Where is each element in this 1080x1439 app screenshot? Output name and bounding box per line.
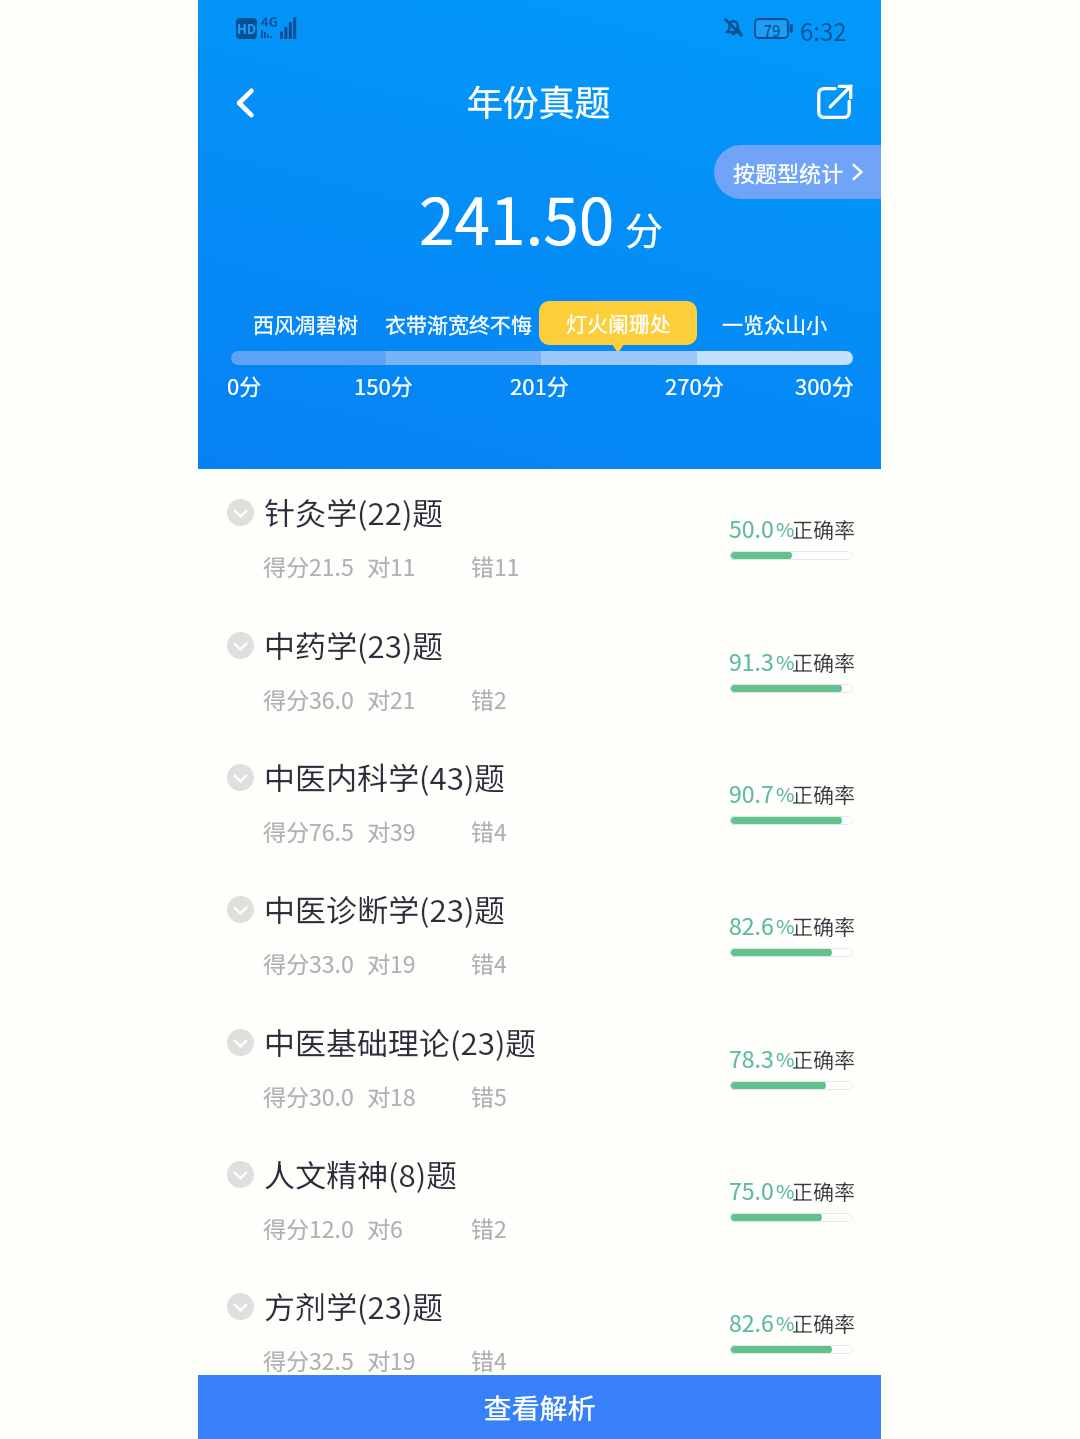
button[interactable]: 中医基础理论(23)题 (198, 1000, 881, 1133)
staticText: 正确率 (792, 779, 855, 809)
button[interactable]: 人文精神(8)题 (198, 1132, 881, 1265)
staticText: 错5 (471, 1079, 507, 1112)
button[interactable]: 查看解析 (198, 1375, 881, 1439)
staticText: 对21 (367, 682, 416, 715)
staticText: % (776, 1308, 795, 1337)
staticText: % (776, 647, 795, 676)
staticText: 分 (625, 201, 664, 256)
button[interactable]: 中医内科学(43)题 (198, 735, 881, 868)
staticText: % (776, 1176, 795, 1205)
staticText: HD (237, 19, 257, 38)
staticText: 对19 (367, 1343, 416, 1376)
staticText: 正确率 (792, 1308, 855, 1338)
button[interactable]: 方剂学(23)题 (198, 1264, 881, 1397)
staticText: 衣带渐宽终不悔 (385, 309, 532, 339)
staticText: % (776, 911, 795, 940)
staticText: 150分 (354, 369, 413, 401)
staticText: 对19 (367, 946, 416, 979)
staticText: 按题型统计 (733, 156, 844, 188)
button[interactable]: 中药学(23)题 (198, 603, 881, 736)
button[interactable]: 灯火阑珊处 (539, 301, 697, 345)
staticText: 错2 (471, 682, 507, 715)
staticText: 错11 (471, 549, 520, 582)
staticText: 一览众山小 (722, 309, 827, 339)
staticText: 中医内科学(43)题 (264, 754, 506, 799)
staticText: 正确率 (792, 514, 855, 544)
staticText: 错4 (471, 946, 507, 979)
staticText: 得分32.5 (263, 1343, 354, 1376)
staticText: % (776, 514, 795, 543)
staticText: 得分30.0 (263, 1079, 354, 1112)
staticText: 方剂学(23)题 (264, 1283, 444, 1328)
staticText: 201分 (510, 369, 569, 401)
staticText: 82.6 (729, 908, 774, 941)
staticText: 对11 (367, 549, 416, 582)
staticText: 得分76.5 (263, 814, 354, 847)
button[interactable]: 按题型统计 (714, 145, 881, 199)
staticText: 灯火阑珊处 (566, 308, 671, 338)
staticText: 查看解析 (483, 1387, 596, 1428)
staticText: 正确率 (792, 911, 855, 941)
staticText: 79 (756, 20, 788, 42)
staticText: 对39 (367, 814, 416, 847)
staticText: 91.3 (729, 644, 774, 677)
staticText: 得分33.0 (263, 946, 354, 979)
staticText: 西风凋碧树 (253, 309, 358, 339)
staticText: 4G (261, 12, 278, 31)
button[interactable]: 针灸学(22)题 (198, 470, 881, 603)
staticText: 中药学(23)题 (264, 622, 444, 667)
staticText: 人文精神(8)题 (264, 1151, 458, 1196)
staticText: 270分 (665, 369, 724, 401)
staticText: 正确率 (792, 647, 855, 677)
staticText: 6:32 (800, 13, 847, 48)
staticText: 75.0 (729, 1173, 774, 1206)
staticText: 对6 (367, 1211, 403, 1244)
button[interactable]: 中医诊断学(23)题 (198, 867, 881, 1000)
staticText: % (776, 779, 795, 808)
staticText: 得分21.5 (263, 549, 354, 582)
staticText: 对18 (367, 1079, 416, 1112)
staticText: 正确率 (792, 1044, 855, 1074)
staticText: 中医基础理论(23)题 (264, 1019, 537, 1064)
staticText: 50.0 (729, 511, 774, 544)
staticText: 得分12.0 (263, 1211, 354, 1244)
staticText: 300分 (795, 369, 854, 401)
staticText: 错2 (471, 1211, 507, 1244)
button[interactable]: Share (797, 66, 871, 140)
staticText: 241.50 (419, 171, 615, 264)
staticText: % (776, 1044, 795, 1073)
staticText: 正确率 (792, 1176, 855, 1206)
staticText: 错4 (471, 814, 507, 847)
button[interactable]: Back (209, 66, 283, 140)
staticText: 针灸学(22)题 (264, 489, 444, 534)
staticText: 中医诊断学(23)题 (264, 886, 506, 931)
staticText: 78.3 (729, 1041, 774, 1074)
staticText: 得分36.0 (263, 682, 354, 715)
staticText: 90.7 (729, 776, 774, 809)
staticText: 错4 (471, 1343, 507, 1376)
staticText: 82.6 (729, 1305, 774, 1338)
staticText: 年份真题 (464, 74, 613, 126)
staticText: 0分 (227, 369, 262, 401)
